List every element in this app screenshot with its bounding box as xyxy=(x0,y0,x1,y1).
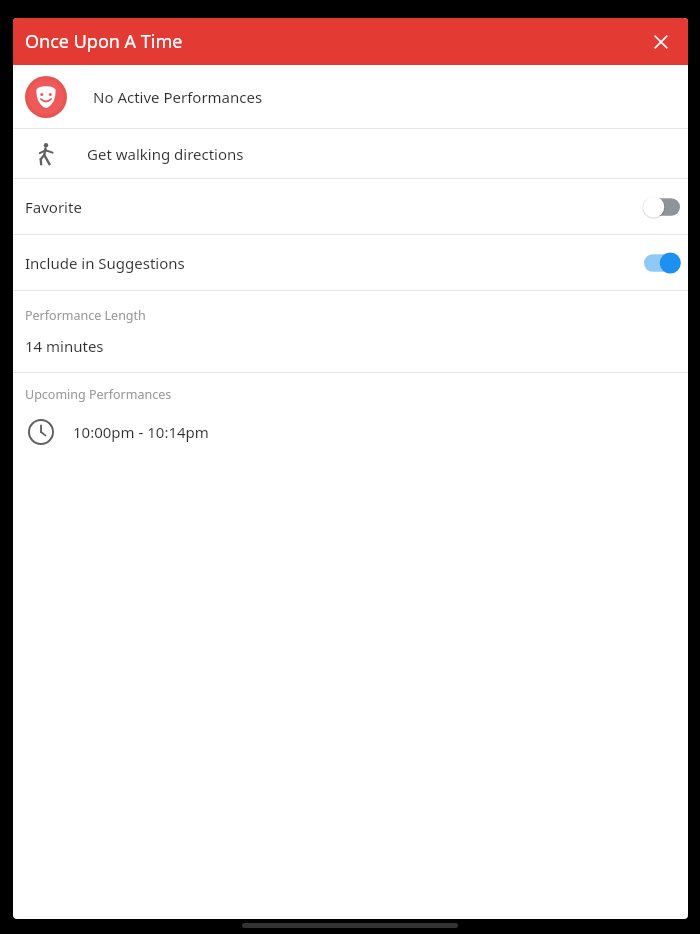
button[interactable]: Get walking directions xyxy=(13,129,688,178)
button[interactable]: Favorite xyxy=(13,179,688,234)
button[interactable]: 14 minutes xyxy=(13,324,688,372)
staticText: Performance Length xyxy=(25,307,146,324)
button[interactable]: 10:00pm - 10:14pm xyxy=(13,403,688,461)
button[interactable]: No Active Performances xyxy=(13,65,688,128)
staticText: Include in Suggestions xyxy=(25,253,185,273)
staticText: Upcoming Performances xyxy=(25,386,172,403)
staticText: Favorite xyxy=(25,197,82,217)
staticText: Get walking directions xyxy=(87,144,244,164)
staticText: Once Upon A Time xyxy=(25,29,183,54)
staticText: 14 minutes xyxy=(25,336,104,356)
button[interactable]: Include in Suggestions xyxy=(13,235,688,290)
staticText: 10:00pm - 10:14pm xyxy=(73,422,209,442)
staticText: No Active Performances xyxy=(93,87,263,107)
button[interactable]: Close xyxy=(644,25,678,59)
